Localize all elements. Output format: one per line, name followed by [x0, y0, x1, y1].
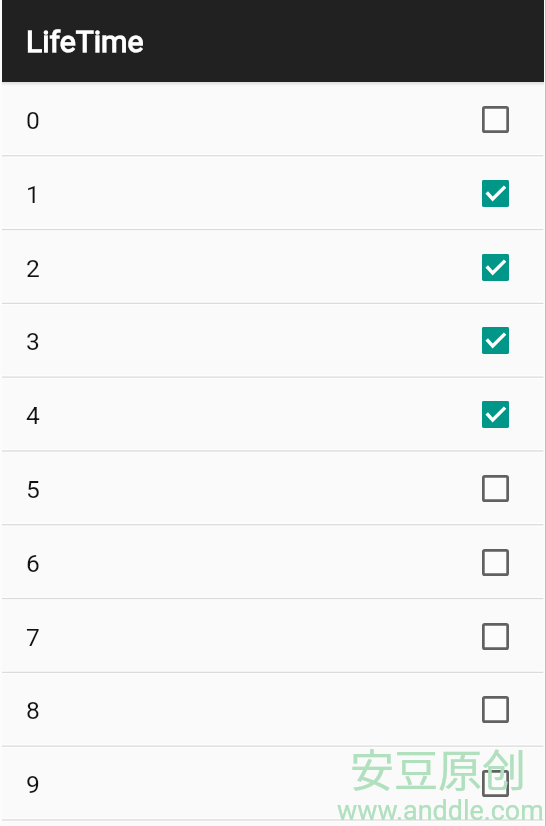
staticText: 0	[26, 106, 40, 135]
button[interactable]: Checked	[482, 254, 509, 281]
button[interactable]: Unchecked	[482, 549, 509, 576]
staticText: 5	[26, 475, 40, 504]
button[interactable]: 4	[0, 377, 546, 451]
staticText: 4	[26, 401, 40, 430]
button[interactable]: Checked	[482, 180, 509, 207]
button[interactable]: 5	[0, 451, 546, 525]
staticText: 9	[26, 770, 40, 799]
staticText: 7	[26, 623, 40, 652]
button[interactable]: 0	[0, 82, 546, 156]
button[interactable]: 3	[0, 303, 546, 377]
staticText: 6	[26, 549, 40, 578]
button[interactable]: 9	[0, 746, 546, 820]
staticText: 1	[26, 180, 40, 209]
staticText: 2	[26, 254, 40, 283]
button[interactable]: 7	[0, 599, 546, 673]
staticText: 3	[26, 327, 40, 356]
staticText: www.anddle.com	[337, 795, 544, 826]
button[interactable]: 1	[0, 156, 546, 230]
button[interactable]: 6	[0, 525, 546, 599]
button[interactable]: Unchecked	[482, 770, 509, 797]
button[interactable]: Unchecked	[482, 475, 509, 502]
button[interactable]: Checked	[482, 401, 509, 428]
button[interactable]: Checked	[482, 327, 509, 354]
button[interactable]: Unchecked	[482, 106, 509, 133]
staticText: 8	[26, 696, 40, 725]
button[interactable]: 2	[0, 230, 546, 304]
button[interactable]: 8	[0, 672, 546, 746]
staticText: LifeTime	[26, 24, 144, 59]
staticText: 安豆原创	[350, 736, 526, 800]
button[interactable]: Unchecked	[482, 696, 509, 723]
button[interactable]: Unchecked	[482, 623, 509, 650]
